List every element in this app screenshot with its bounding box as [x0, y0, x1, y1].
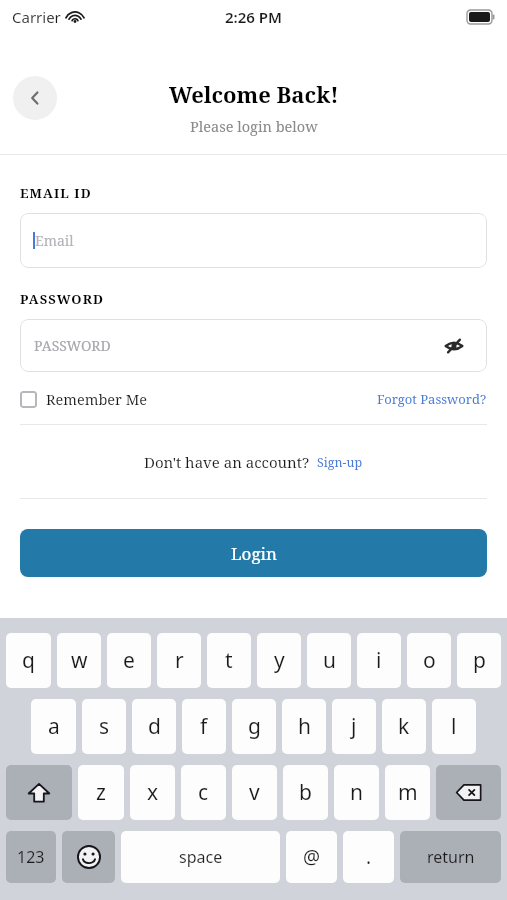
staticText: a	[48, 712, 60, 741]
staticText: .	[366, 844, 372, 870]
button[interactable]: @	[286, 831, 337, 883]
staticText: b	[299, 778, 312, 807]
button[interactable]: p	[457, 633, 501, 688]
button[interactable]: g	[232, 699, 276, 754]
button[interactable]: Login	[20, 529, 487, 577]
staticText: l	[451, 712, 457, 741]
staticText: t	[225, 646, 233, 675]
staticText: d	[148, 712, 161, 741]
staticText: Carrier	[12, 7, 61, 27]
staticText: g	[248, 712, 261, 741]
button[interactable]: Back	[13, 76, 57, 120]
staticText: Forgot Password?	[377, 390, 487, 408]
button[interactable]: x	[130, 765, 175, 820]
staticText: o	[423, 646, 436, 675]
staticText: h	[298, 712, 311, 741]
staticText: PASSWORD	[20, 290, 105, 308]
staticText: PASSWORD	[34, 336, 111, 355]
button[interactable]: f	[182, 699, 226, 754]
staticText: Login	[231, 542, 277, 565]
button[interactable]: n	[334, 765, 379, 820]
staticText: 123	[17, 846, 45, 868]
staticText: Email	[35, 231, 74, 250]
staticText: x	[147, 778, 159, 807]
staticText: u	[323, 646, 336, 675]
button[interactable]: r	[157, 633, 201, 688]
staticText: k	[398, 712, 410, 741]
button[interactable]: k	[382, 699, 426, 754]
button[interactable]: Forgot Password?	[377, 390, 487, 408]
button[interactable]: c	[181, 765, 226, 820]
button[interactable]: h	[282, 699, 326, 754]
button[interactable]: Remember Me	[20, 389, 148, 409]
button[interactable]: t	[207, 633, 251, 688]
staticText: j	[351, 712, 357, 741]
staticText: 2:26 PM	[225, 7, 282, 27]
button[interactable]: b	[283, 765, 328, 820]
staticText: space	[179, 846, 223, 868]
staticText: Remember Me	[46, 389, 148, 409]
button[interactable]: a	[31, 699, 76, 754]
staticText: e	[123, 646, 135, 675]
button[interactable]: w	[57, 633, 101, 688]
staticText: Don't have an account?	[144, 452, 310, 472]
button[interactable]: space	[121, 831, 280, 883]
staticText: return	[427, 846, 475, 868]
button[interactable]: Emoji	[62, 831, 115, 883]
staticText: p	[473, 646, 486, 675]
button[interactable]: z	[78, 765, 124, 820]
staticText: w	[71, 646, 88, 675]
button[interactable]: Show password	[439, 331, 469, 361]
staticText: Please login below	[190, 116, 318, 136]
button[interactable]: m	[385, 765, 430, 820]
button[interactable]: e	[107, 633, 151, 688]
staticText: z	[96, 778, 106, 807]
staticText: f	[200, 712, 208, 741]
staticText: EMAIL ID	[20, 184, 92, 202]
button[interactable]: u	[307, 633, 351, 688]
button[interactable]: q	[6, 633, 51, 688]
button[interactable]: Backspace	[436, 765, 501, 820]
staticText: q	[22, 646, 35, 675]
button[interactable]: Shift	[6, 765, 72, 820]
staticText: c	[198, 778, 209, 807]
button[interactable]: Email	[20, 213, 487, 268]
button[interactable]: y	[257, 633, 301, 688]
staticText: i	[376, 646, 382, 675]
button[interactable]: 123	[6, 831, 56, 883]
button[interactable]: return	[400, 831, 501, 883]
staticText: s	[99, 712, 110, 741]
button[interactable]: .	[343, 831, 394, 883]
staticText: y	[274, 646, 285, 675]
staticText: Welcome Back!	[169, 79, 339, 109]
button[interactable]: Sign-up	[317, 454, 363, 471]
button[interactable]: l	[432, 699, 476, 754]
button[interactable]: o	[407, 633, 451, 688]
staticText: v	[249, 778, 260, 807]
staticText: m	[398, 778, 418, 807]
button[interactable]: d	[132, 699, 176, 754]
button[interactable]: v	[232, 765, 277, 820]
staticText: n	[350, 778, 363, 807]
button[interactable]: PASSWORD	[20, 319, 487, 372]
button[interactable]: j	[332, 699, 376, 754]
staticText: Sign-up	[317, 454, 363, 471]
staticText: r	[175, 646, 184, 675]
button[interactable]: s	[82, 699, 126, 754]
button[interactable]: i	[357, 633, 401, 688]
staticText: @	[303, 844, 321, 870]
